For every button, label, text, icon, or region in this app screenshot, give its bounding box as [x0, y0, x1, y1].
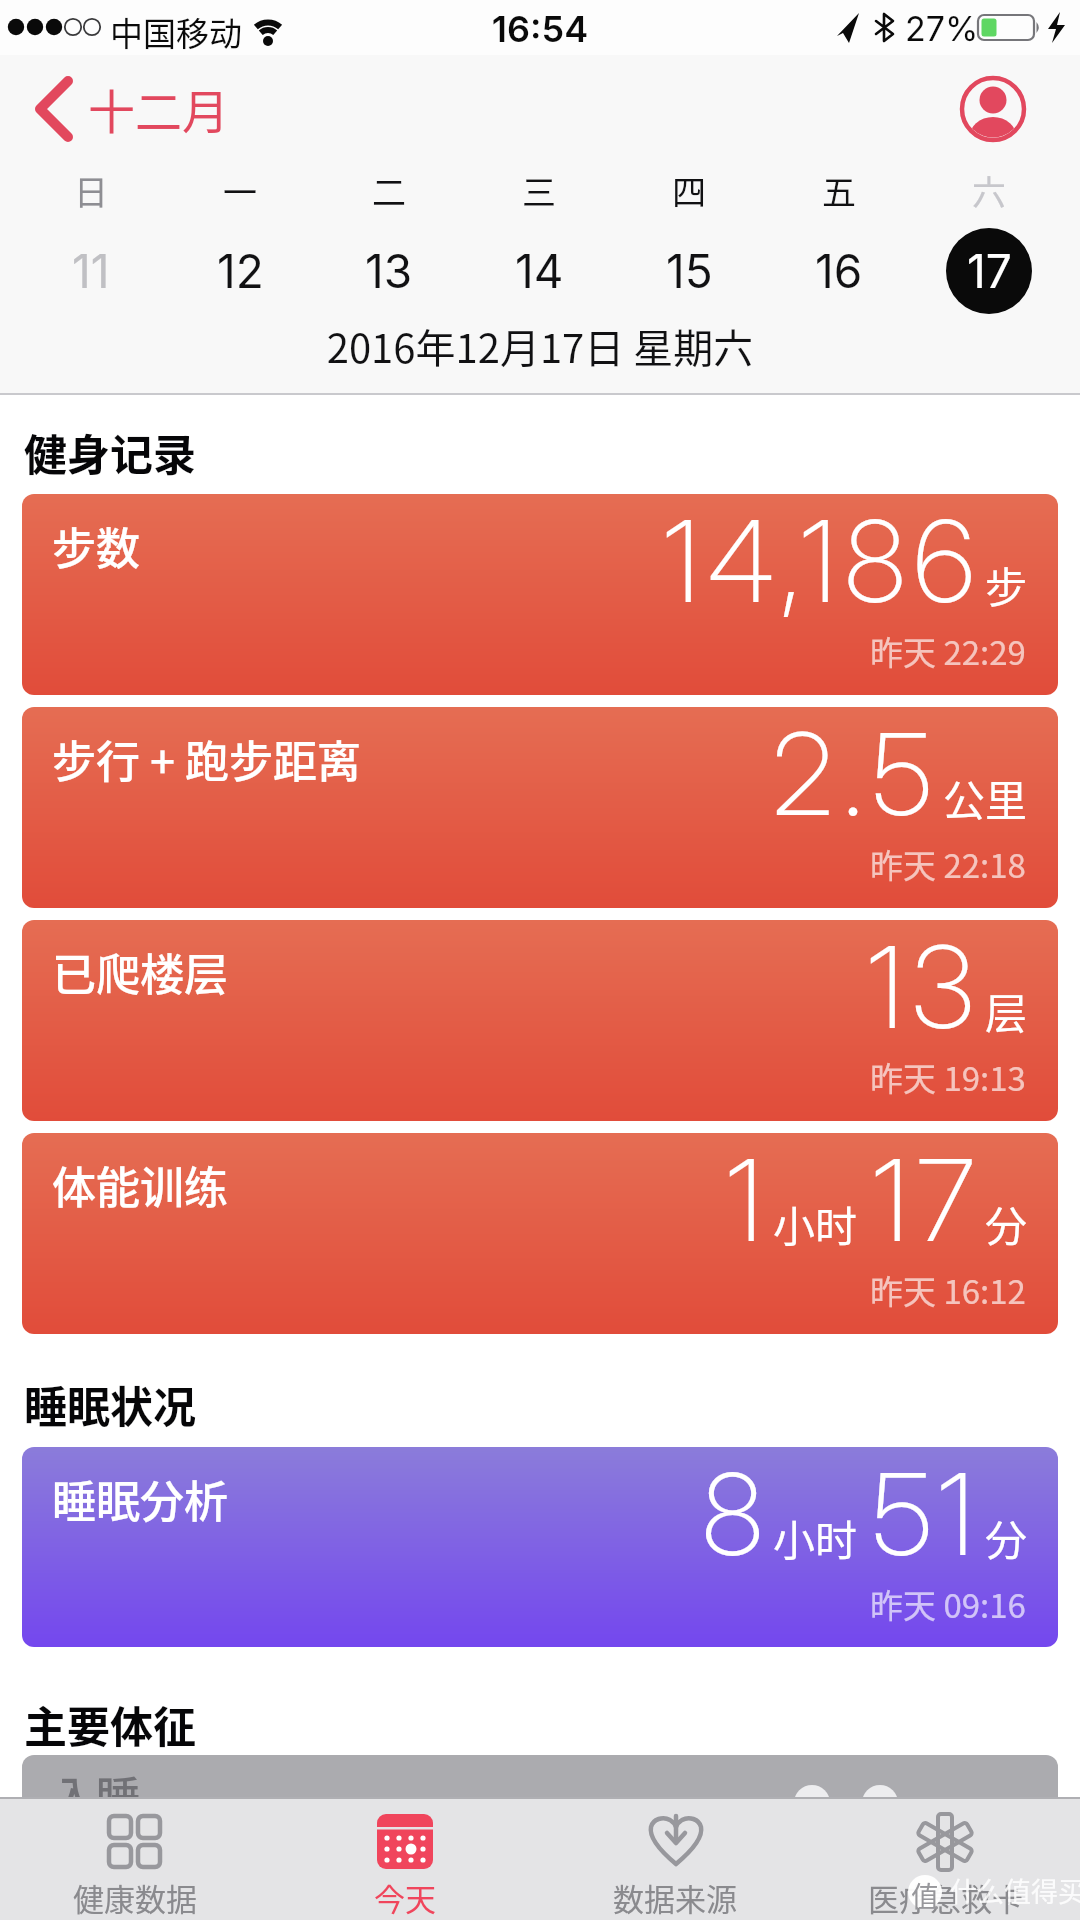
button[interactable]: 13	[346, 228, 432, 314]
staticText: 昨天 19:13	[870, 1053, 1026, 1101]
staticText: 医疗急救卡	[868, 1875, 1023, 1920]
staticText: 一	[223, 166, 257, 215]
staticText: 入睡	[52, 1763, 140, 1827]
staticText: 健身记录	[24, 421, 196, 483]
button[interactable]: 数据来源	[540, 1797, 810, 1920]
staticText: 51	[872, 1447, 983, 1583]
staticText: 13	[867, 920, 983, 1056]
staticText: 小时	[773, 1193, 858, 1254]
button[interactable]: 11	[48, 228, 134, 314]
staticText: 步行 + 跑步距离	[52, 727, 361, 791]
button[interactable]: 睡眠分析	[22, 1447, 1058, 1647]
staticText: 体能训练	[52, 1153, 228, 1217]
staticText: 昨天 22:18	[870, 840, 1026, 888]
staticText: 步	[985, 554, 1028, 615]
button[interactable]: 17	[946, 228, 1032, 314]
button[interactable]: 健康数据	[0, 1797, 270, 1920]
staticText: 什么值得买	[950, 1871, 1080, 1910]
staticText: 16	[815, 243, 863, 299]
staticText: 17	[967, 243, 1012, 299]
staticText: 已爬楼层	[52, 940, 228, 1004]
staticText: 13	[365, 243, 413, 299]
staticText: 六	[972, 166, 1006, 215]
staticText: 1	[726, 1133, 771, 1269]
button[interactable]: 步行 + 跑步距离	[22, 707, 1058, 908]
staticText: 主要体征	[24, 1693, 196, 1755]
button[interactable]: 十二月	[30, 78, 230, 142]
staticText: 十二月	[88, 74, 229, 138]
staticText: 健康数据	[73, 1875, 197, 1920]
staticText: 三	[522, 166, 556, 215]
staticText: 2016年12月17日 星期六	[0, 317, 1080, 375]
staticText: 11	[72, 243, 110, 299]
staticText: 17	[872, 1133, 983, 1269]
button[interactable]: 14	[496, 228, 582, 314]
button[interactable]: 体能训练	[22, 1133, 1058, 1334]
button[interactable]: 12	[197, 228, 283, 314]
staticText: 15	[666, 243, 713, 299]
staticText: 二	[372, 166, 406, 215]
staticText: 步数	[52, 514, 140, 578]
staticText: 公里	[943, 767, 1028, 828]
staticText: 14,186	[663, 494, 983, 630]
button[interactable]: 步数	[22, 494, 1058, 695]
staticText: 12	[217, 243, 264, 299]
staticText: 五	[822, 166, 856, 215]
staticText: 睡眠状况	[24, 1373, 196, 1435]
staticText: 昨天 09:16	[870, 1580, 1026, 1628]
button[interactable]	[959, 75, 1027, 143]
button[interactable]: 医疗急救卡	[810, 1797, 1080, 1920]
staticText: 8	[702, 1447, 771, 1583]
staticText: 昨天 22:29	[870, 627, 1026, 675]
staticText: 16:54	[0, 7, 1080, 51]
button[interactable]: 15	[646, 228, 732, 314]
staticText: 层	[985, 980, 1028, 1041]
staticText: 睡眠分析	[52, 1467, 228, 1531]
button[interactable]: 今天	[270, 1797, 540, 1920]
staticText: 四	[672, 166, 706, 215]
staticText: 小时	[773, 1507, 858, 1568]
staticText: 日	[74, 166, 108, 215]
button[interactable]: 16	[796, 228, 882, 314]
staticText: 2.5	[772, 707, 941, 843]
staticText: 27%	[905, 8, 979, 49]
staticText: 值	[911, 1875, 940, 1916]
button[interactable]: 已爬楼层	[22, 920, 1058, 1121]
staticText: 分	[985, 1193, 1028, 1254]
staticText: 中国移动	[110, 8, 242, 56]
staticText: 昨天 16:12	[870, 1266, 1026, 1314]
staticText: 数据来源	[613, 1875, 737, 1920]
staticText: 分	[985, 1507, 1028, 1568]
staticText: 14	[515, 243, 564, 299]
staticText: 今天	[374, 1875, 436, 1920]
